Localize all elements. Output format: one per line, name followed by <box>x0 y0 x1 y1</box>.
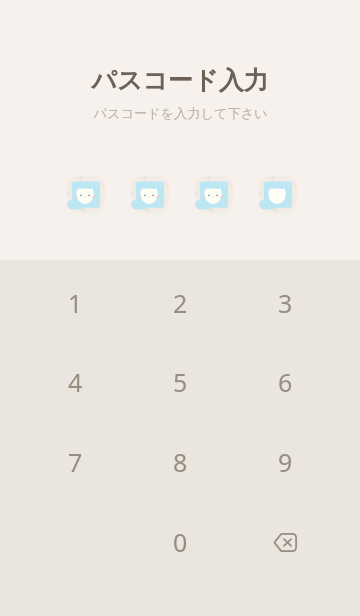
staticText: 7 <box>68 445 83 479</box>
staticText: 5 <box>173 365 188 399</box>
staticText: 2 <box>173 286 188 320</box>
button[interactable]: 9 <box>245 428 325 496</box>
button[interactable]: Delete <box>245 508 325 576</box>
staticText: パスコード入力 <box>91 65 269 96</box>
staticText: 3 <box>278 286 293 320</box>
staticText: 9 <box>278 445 293 479</box>
button[interactable]: 6 <box>245 348 325 416</box>
staticText: 0 <box>173 525 188 559</box>
staticText: 4 <box>68 365 83 399</box>
staticText: パスコードを入力して下さい <box>93 105 268 122</box>
staticText: 1 <box>68 286 83 320</box>
button[interactable]: 1 <box>35 269 115 337</box>
button[interactable]: 2 <box>140 269 220 337</box>
staticText: 6 <box>278 365 293 399</box>
button[interactable]: 0 <box>140 508 220 576</box>
button[interactable]: 7 <box>35 428 115 496</box>
button[interactable]: 5 <box>140 348 220 416</box>
staticText: 8 <box>173 445 188 479</box>
button[interactable]: 8 <box>140 428 220 496</box>
button[interactable]: 4 <box>35 348 115 416</box>
button[interactable]: 3 <box>245 269 325 337</box>
